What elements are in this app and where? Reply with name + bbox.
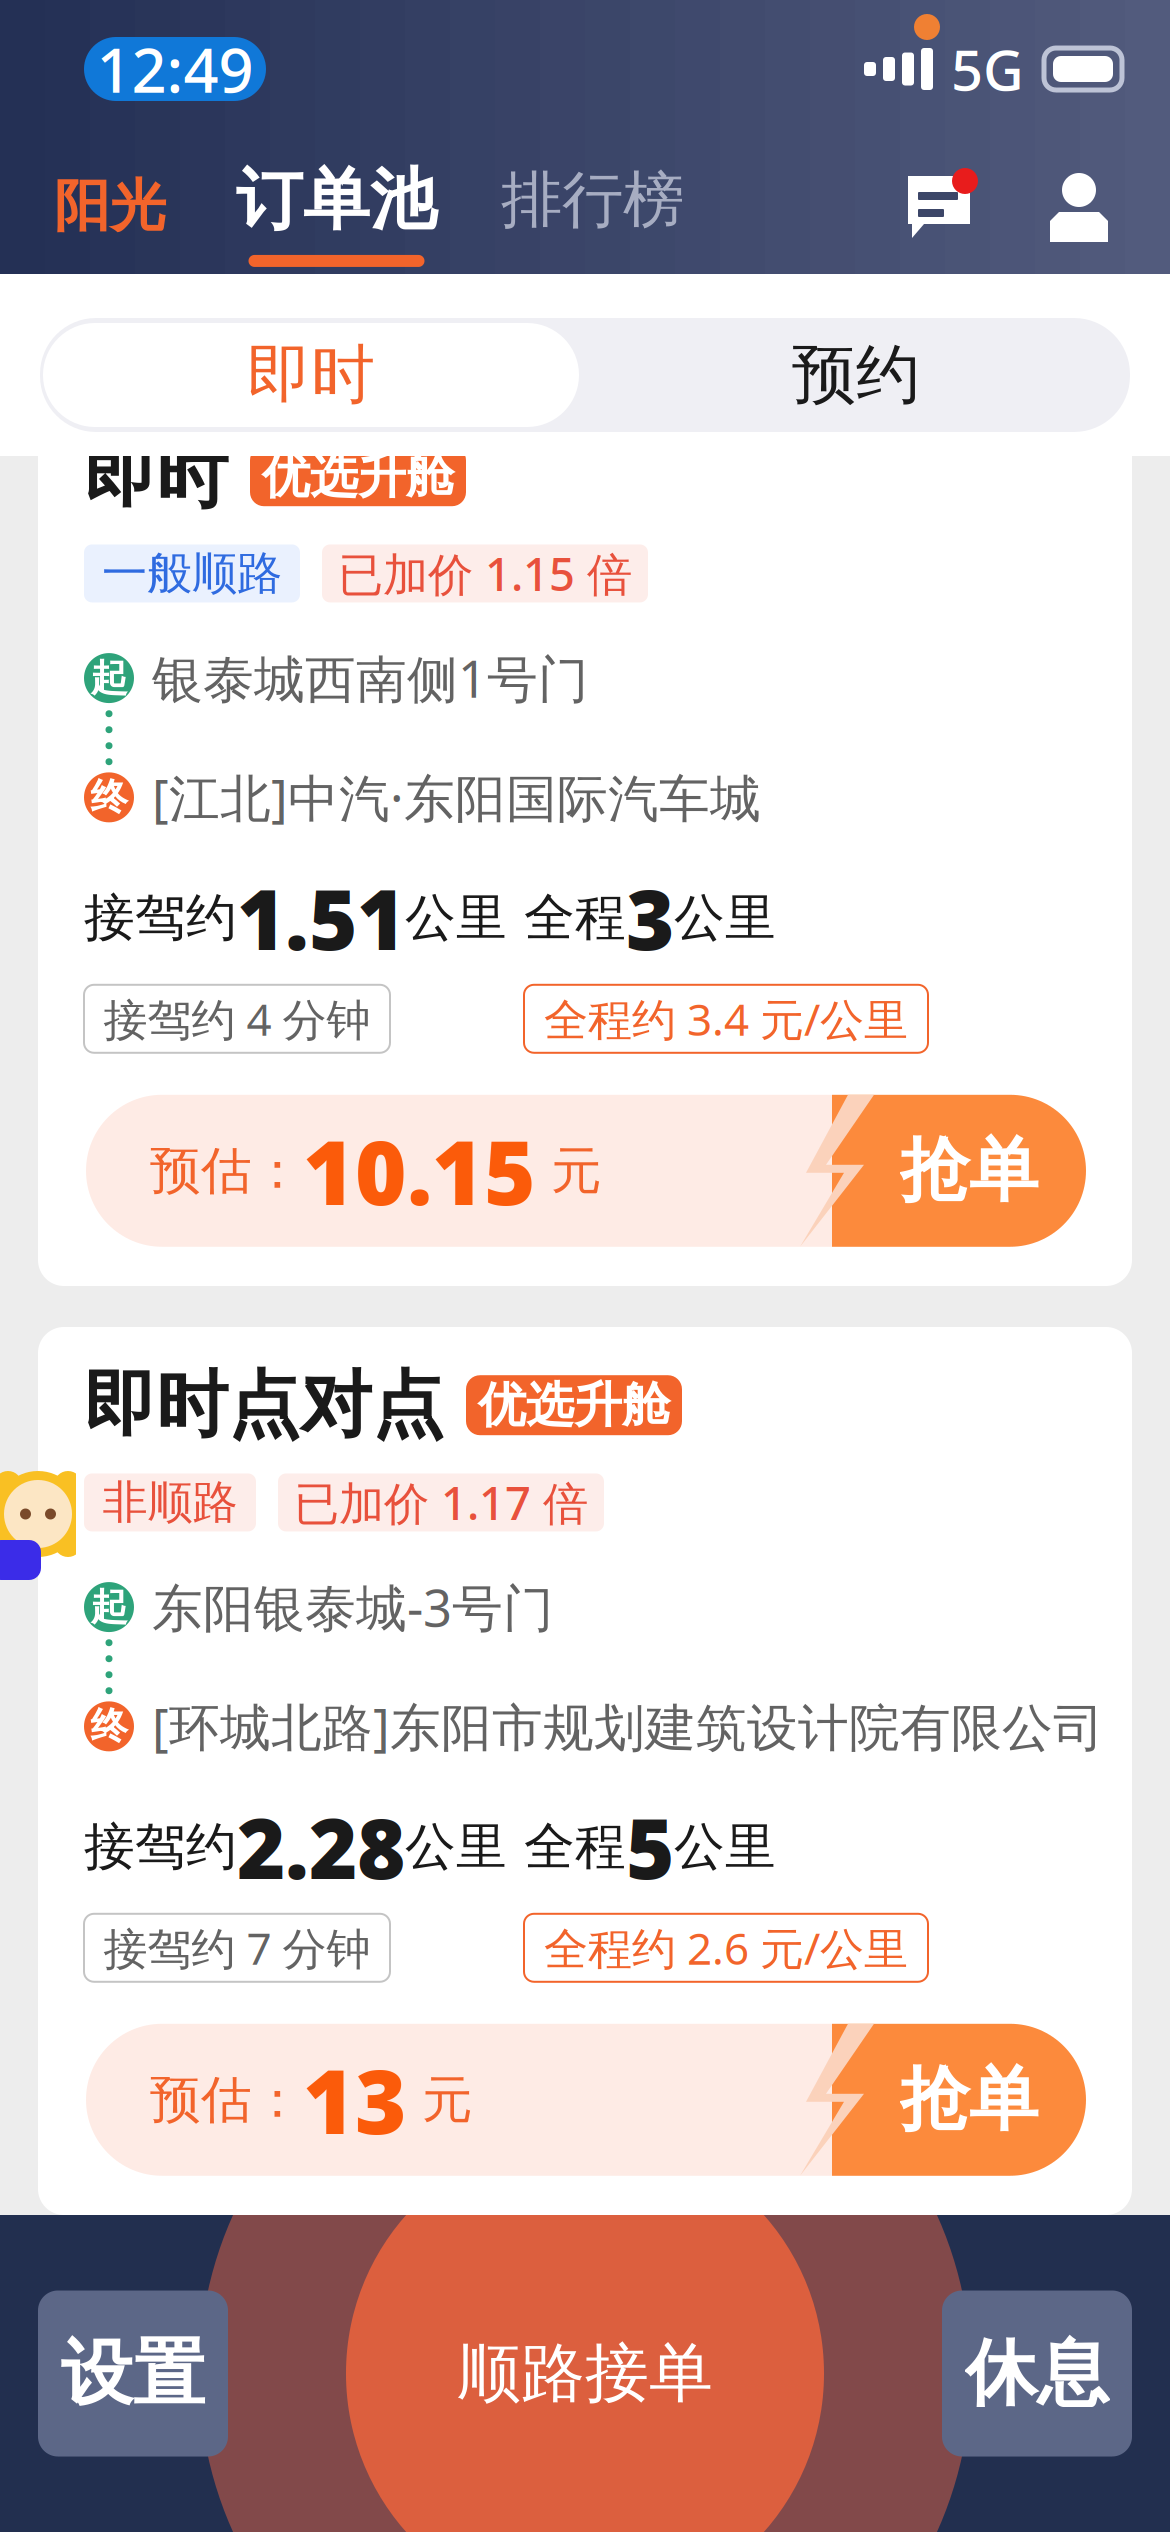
staticText: 东阳银泰城-3号门 bbox=[152, 1573, 554, 1641]
staticText: 非顺路 bbox=[102, 1475, 237, 1530]
staticText: 公里 bbox=[674, 1816, 776, 1878]
staticText: 银泰城西南侧1号门 bbox=[152, 644, 589, 712]
button[interactable]: 阳光 bbox=[54, 138, 166, 274]
staticText: 12:49 bbox=[96, 28, 253, 110]
button[interactable]: 排行榜 bbox=[501, 138, 684, 274]
button[interactable]: 即时 bbox=[40, 318, 582, 432]
staticText: 优选升舱 bbox=[262, 447, 454, 506]
staticText: 终 bbox=[90, 774, 127, 820]
staticText: 起 bbox=[90, 1584, 127, 1630]
staticText: 设置 bbox=[61, 2329, 205, 2418]
staticText: 1.51 bbox=[237, 863, 405, 973]
staticText: 订单池 bbox=[236, 159, 437, 241]
staticText: 排行榜 bbox=[501, 162, 684, 238]
staticText: 2.28 bbox=[237, 1792, 405, 1902]
staticText: 公里 bbox=[405, 887, 507, 949]
staticText: 全程 bbox=[524, 1816, 626, 1878]
staticText: 顺路接单 bbox=[457, 2334, 713, 2413]
staticText: 即时点对点 bbox=[84, 1361, 444, 1449]
staticText: 一般顺路 bbox=[102, 546, 282, 601]
staticText: 起 bbox=[90, 655, 127, 701]
button[interactable]: 顺路接单 bbox=[375, 2290, 795, 2456]
button[interactable]: 预估： bbox=[86, 1095, 1086, 1247]
staticText: 预估： bbox=[150, 2069, 303, 2131]
staticText: 接驾约 bbox=[84, 1816, 237, 1878]
staticText: 预约 bbox=[792, 336, 920, 414]
staticText: 已加价 1.17 倍 bbox=[294, 1472, 588, 1532]
button[interactable]: 预估： bbox=[86, 2024, 1086, 2176]
staticText: 接驾约 4 分钟 bbox=[103, 990, 370, 1048]
staticText: 元 bbox=[536, 1140, 602, 1202]
button[interactable]: Profile bbox=[1048, 138, 1110, 274]
staticText: 全程约 2.6 元/公里 bbox=[544, 1919, 908, 1977]
staticText: 接驾约 bbox=[84, 887, 237, 949]
staticText: 阳光 bbox=[54, 172, 166, 240]
staticText: 10.15 bbox=[303, 1112, 536, 1229]
staticText: 全程约 3.4 元/公里 bbox=[544, 990, 908, 1048]
staticText: 抢单 bbox=[900, 1128, 1038, 1213]
staticText: 公里 bbox=[405, 1816, 507, 1878]
staticText: [江北]中汽·东阳国际汽车城 bbox=[152, 764, 761, 831]
staticText: 5G bbox=[951, 32, 1024, 106]
staticText: 抢单 bbox=[900, 2057, 1038, 2142]
staticText: 元 bbox=[407, 2069, 473, 2131]
button[interactable]: 设置 bbox=[38, 2290, 228, 2456]
staticText: 即时 bbox=[247, 336, 375, 414]
button[interactable]: 订单池 bbox=[236, 138, 437, 274]
button[interactable]: 休息 bbox=[942, 2290, 1132, 2456]
staticText: 休息 bbox=[965, 2329, 1109, 2418]
staticText: [环城北路]东阳市规划建筑设计院有限公司 bbox=[152, 1693, 1104, 1760]
button[interactable]: 预约 bbox=[582, 318, 1130, 432]
staticText: 预估： bbox=[150, 1140, 303, 1202]
staticText: 即时 bbox=[84, 432, 228, 520]
staticText: 3 bbox=[626, 863, 674, 973]
staticText: 接驾约 7 分钟 bbox=[103, 1919, 370, 1977]
staticText: 终 bbox=[90, 1703, 127, 1749]
staticText: 已加价 1.15 倍 bbox=[338, 543, 632, 603]
button[interactable]: Messages bbox=[904, 138, 980, 274]
staticText: 全程 bbox=[524, 887, 626, 949]
staticText: 5 bbox=[626, 1792, 674, 1902]
staticText: 公里 bbox=[674, 887, 776, 949]
staticText: 13 bbox=[303, 2041, 407, 2158]
staticText: 优选升舱 bbox=[478, 1376, 670, 1435]
